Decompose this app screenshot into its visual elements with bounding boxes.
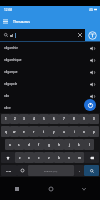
staticText: r [33, 130, 35, 134]
staticText: h [58, 143, 60, 147]
button[interactable]: olio [0, 90, 100, 102]
button[interactable]: b [54, 152, 64, 163]
staticText: English (US) [44, 169, 58, 172]
staticText: 12:58 [4, 8, 13, 12]
button[interactable]: Clear search [75, 29, 85, 41]
staticText: a [9, 143, 11, 147]
staticText: b [58, 156, 60, 160]
button[interactable]: n [64, 152, 74, 163]
button[interactable]: Recent apps [0, 177, 34, 200]
button[interactable]: g [44, 139, 54, 150]
button[interactable]: m [74, 152, 84, 163]
staticText: f [38, 143, 40, 147]
button[interactable]: . [74, 165, 84, 176]
staticText: oligarchique [4, 58, 22, 62]
staticText: 3 [23, 117, 25, 121]
staticText: p [93, 130, 95, 134]
staticText: d [28, 143, 30, 147]
button[interactable]: o [79, 126, 89, 137]
button[interactable]: 6 [49, 114, 59, 124]
staticText: 2 [14, 117, 16, 121]
button[interactable]: English (US) [28, 165, 74, 176]
button[interactable]: oligarchique [0, 54, 100, 66]
button[interactable]: 8 [69, 114, 79, 124]
button[interactable]: olive [0, 102, 100, 113]
staticText: c [38, 156, 40, 160]
button[interactable]: e [19, 126, 29, 137]
button[interactable]: v [44, 152, 54, 163]
button[interactable]: t [39, 126, 49, 137]
button[interactable]: i [69, 126, 79, 137]
button[interactable]: Shift [1, 152, 15, 163]
staticText: 1 [5, 117, 7, 121]
button[interactable]: z [15, 152, 24, 163]
button[interactable]: 9 [79, 114, 89, 124]
button[interactable]: p [89, 126, 99, 137]
staticText: v [48, 156, 50, 160]
button[interactable]: d [24, 139, 34, 150]
staticText: e [23, 130, 25, 134]
button[interactable]: ?123 [1, 165, 17, 176]
staticText: oligarque [4, 70, 18, 74]
staticText: q [5, 130, 7, 134]
staticText: i [74, 130, 75, 134]
button[interactable]: j [64, 139, 74, 150]
button[interactable]: ol [0, 29, 75, 41]
staticText: . [79, 169, 80, 173]
staticText: n [68, 156, 70, 160]
button[interactable]: Home [34, 177, 67, 200]
button[interactable]: l [84, 139, 94, 150]
staticText: w [13, 130, 16, 134]
button[interactable]: s [14, 139, 24, 150]
staticText: y [53, 130, 55, 134]
staticText: g [48, 143, 50, 147]
button[interactable]: c [34, 152, 44, 163]
staticText: oligopole [4, 82, 18, 86]
button[interactable]: 1 [1, 114, 10, 124]
button[interactable]: h [54, 139, 64, 150]
button[interactable]: Emoji [17, 165, 28, 176]
button[interactable]: 4 [29, 114, 39, 124]
button[interactable]: 5 [39, 114, 49, 124]
staticText: 6 [53, 117, 55, 121]
button[interactable]: 7 [59, 114, 69, 124]
staticText: ?123 [6, 169, 12, 172]
button[interactable]: Backspace [84, 152, 99, 163]
button[interactable]: k [74, 139, 84, 150]
staticText: x [28, 156, 30, 160]
staticText: 8 [73, 117, 75, 121]
button[interactable]: u [59, 126, 69, 137]
staticText: oligarchie [4, 46, 18, 50]
staticText: 4 [33, 117, 35, 121]
button[interactable]: y [49, 126, 59, 137]
button[interactable]: Back [67, 177, 100, 200]
button[interactable]: Search [84, 165, 99, 176]
staticText: z [19, 156, 21, 160]
staticText: 0 [93, 117, 95, 121]
button[interactable]: w [10, 126, 19, 137]
button[interactable]: f [34, 139, 44, 150]
staticText: 5 [43, 117, 45, 121]
button[interactable]: oligopole [0, 78, 100, 90]
staticText: t [43, 130, 45, 134]
button[interactable]: oligarque [0, 66, 100, 78]
staticText: u [63, 130, 65, 134]
button[interactable]: oligarchie [0, 42, 100, 54]
staticText: 4G [89, 8, 93, 12]
button[interactable]: 3 [19, 114, 29, 124]
staticText: o [83, 130, 85, 134]
staticText: m [78, 156, 81, 160]
button[interactable]: x [24, 152, 34, 163]
staticText: s [18, 143, 20, 147]
staticText: 7 [63, 117, 65, 121]
button[interactable]: 0 [89, 114, 99, 124]
button[interactable]: q [1, 126, 10, 137]
button[interactable]: a [5, 139, 14, 150]
button[interactable]: Navigation menu [0, 16, 11, 27]
button[interactable]: r [29, 126, 39, 137]
staticText: Thesaurus [13, 19, 30, 24]
staticText: 9 [83, 117, 85, 121]
button[interactable]: Add word [84, 99, 96, 111]
button[interactable]: 2 [10, 114, 19, 124]
button[interactable]: Voice search [85, 29, 100, 41]
